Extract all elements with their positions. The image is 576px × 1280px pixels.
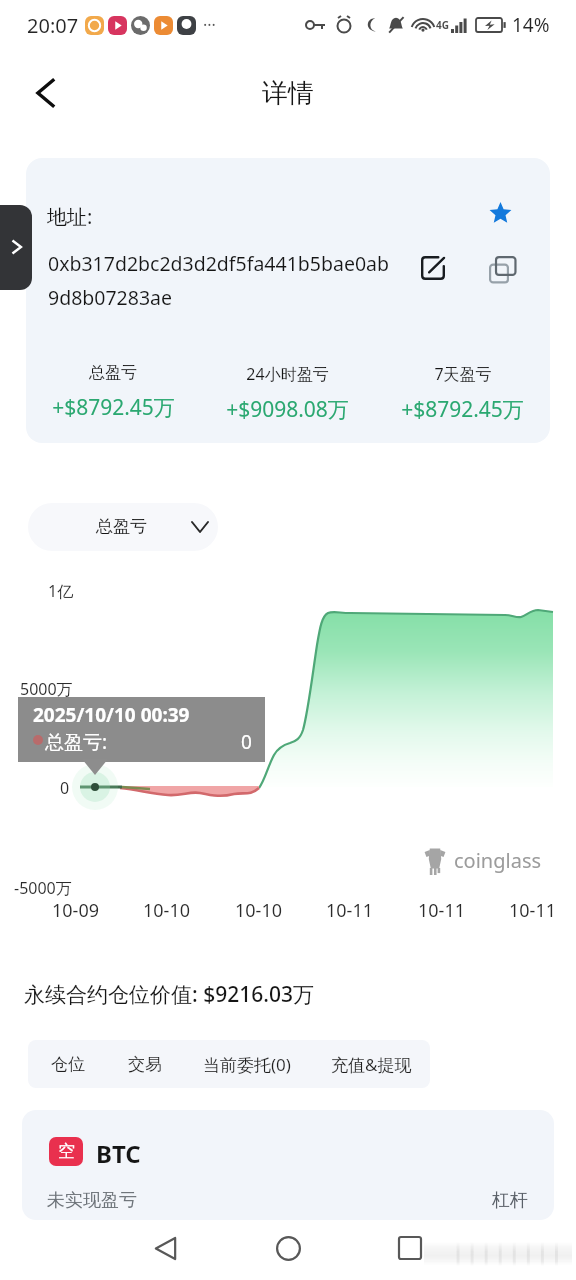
button[interactable]: Home [258, 1218, 318, 1278]
staticText: 未实现盈亏 [47, 1189, 137, 1212]
staticText: 5000万 [20, 678, 73, 700]
staticText: 仓位 [51, 1054, 85, 1075]
button[interactable]: 充值&提现 [312, 1040, 430, 1088]
staticText: +$8792.45万 [52, 393, 175, 422]
staticText: -5000万 [14, 877, 72, 899]
staticText: 10-11 [418, 898, 465, 923]
staticText: +$9098.08万 [226, 395, 349, 424]
button[interactable]: Back [135, 1218, 195, 1278]
staticText: 总盈亏: [45, 729, 108, 755]
button[interactable]: Expand panel [0, 205, 32, 290]
staticText: 10-09 [52, 898, 99, 923]
staticText: 10-10 [143, 898, 190, 923]
staticText: 10-11 [326, 898, 373, 923]
staticText: 2025/10/10 00:39 [33, 702, 190, 728]
staticText: 总盈亏 [89, 363, 137, 383]
staticText: 交易 [128, 1054, 162, 1075]
staticText: +$8792.45万 [401, 395, 524, 424]
staticText: ··· [203, 14, 216, 36]
button[interactable]: Recent apps [380, 1218, 440, 1278]
button[interactable]: Copy [482, 249, 522, 289]
staticText: 4G [436, 18, 449, 32]
staticText: 0xb317d2bc2d3d2df5fa441b5bae0ab 9d8b0728… [48, 250, 408, 311]
staticText: 地址: [47, 203, 93, 230]
staticText: 杠杆 [492, 1189, 528, 1212]
staticText: 0 [241, 729, 252, 755]
staticText: 详情 [262, 77, 314, 110]
staticText: 总盈亏 [96, 516, 147, 537]
button[interactable]: 仓位 [28, 1040, 108, 1088]
staticText: 20:07 [27, 12, 79, 39]
staticText: 当前委托(0) [203, 1053, 291, 1076]
staticText: 10-10 [235, 898, 282, 923]
button[interactable]: Favorite [482, 195, 518, 231]
staticText: 24小时盈亏 [246, 363, 329, 385]
staticText: 14% [512, 12, 550, 38]
staticText: 0 [60, 777, 70, 799]
button[interactable]: 总盈亏 [28, 503, 218, 551]
staticText: 10-11 [509, 898, 556, 923]
button[interactable]: 交易 [108, 1040, 182, 1088]
staticText: 空 [58, 1141, 75, 1162]
button[interactable]: 当前委托(0) [182, 1040, 312, 1088]
staticText: 1亿 [48, 580, 74, 602]
staticText: BTC [96, 1137, 141, 1170]
staticText: coinglass [454, 847, 542, 874]
staticText: 永续合约仓位价值: $9216.03万 [24, 980, 314, 1009]
button[interactable]: Back [22, 70, 68, 116]
staticText: 充值&提现 [331, 1053, 412, 1076]
staticText: 7天盈亏 [434, 363, 492, 385]
button[interactable]: Edit [413, 248, 453, 288]
